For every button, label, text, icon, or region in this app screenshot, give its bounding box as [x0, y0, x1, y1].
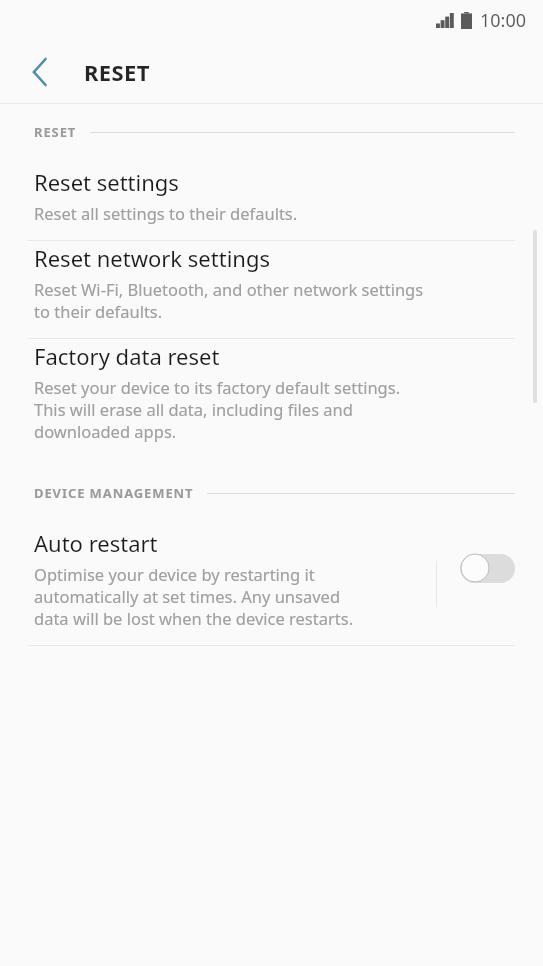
- staticText: to their defaults.: [34, 300, 163, 322]
- staticText: DEVICE MANAGEMENT: [34, 484, 194, 502]
- staticText: Auto restart: [34, 528, 158, 558]
- button[interactable]: Auto restart: [0, 526, 543, 645]
- staticText: Factory data reset: [34, 341, 220, 371]
- staticText: Reset all settings to their defaults.: [34, 202, 298, 224]
- staticText: Reset your device to its factory default…: [34, 376, 401, 398]
- button[interactable]: Back: [18, 50, 62, 94]
- staticText: This will erase all data, including file…: [34, 398, 353, 420]
- staticText: data will be lost when the device restar…: [34, 607, 354, 629]
- staticText: Optimise your device by restarting it: [34, 563, 315, 585]
- staticText: RESET: [84, 57, 150, 87]
- staticText: RESET: [34, 123, 77, 141]
- staticText: downloaded apps.: [34, 420, 177, 442]
- staticText: Reset network settings: [34, 243, 270, 273]
- staticText: Reset settings: [34, 167, 179, 197]
- button[interactable]: Reset network settings: [0, 241, 543, 338]
- button[interactable]: Reset settings: [0, 165, 543, 240]
- button[interactable]: Factory data reset: [0, 339, 543, 458]
- staticText: Reset Wi-Fi, Bluetooth, and other networ…: [34, 278, 424, 300]
- button[interactable]: Auto restart toggle: [451, 546, 523, 590]
- staticText: automatically at set times. Any unsaved: [34, 585, 341, 607]
- staticText: 10:00: [480, 8, 527, 33]
